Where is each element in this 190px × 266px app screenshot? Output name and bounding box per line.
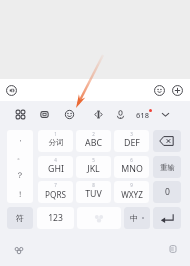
- staticText: 0: [165, 186, 170, 198]
- button[interactable]: 重输: [153, 156, 181, 178]
- button[interactable]: 分词: [38, 130, 73, 152]
- staticText: JKL: [87, 163, 100, 175]
- button[interactable]: Keyboard layouts: [14, 108, 27, 121]
- button[interactable]: 0: [153, 181, 181, 203]
- staticText: ！: [16, 189, 24, 199]
- button[interactable]: GHI: [38, 156, 73, 178]
- button[interactable]: 符: [7, 207, 33, 229]
- staticText: WXYZ: [121, 189, 143, 200]
- button[interactable]: Clipboard: [38, 108, 51, 121]
- staticText: 123: [48, 212, 63, 224]
- button[interactable]: 618: [134, 108, 151, 121]
- button[interactable]: ABC: [76, 130, 111, 152]
- button[interactable]: Keyboard settings: [166, 243, 178, 255]
- staticText: DEF: [124, 137, 140, 149]
- button[interactable]: WXYZ: [114, 181, 149, 203]
- staticText: ，: [17, 134, 24, 143]
- button[interactable]: Space: [77, 207, 121, 229]
- button[interactable]: Backspace: [153, 130, 181, 152]
- button[interactable]: Emoji: [154, 85, 165, 96]
- staticText: 3: [130, 131, 133, 137]
- staticText: PQRS: [45, 189, 66, 200]
- staticText: 1: [54, 131, 57, 137]
- button[interactable]: Text settings: [92, 108, 105, 121]
- staticText: 7: [54, 182, 57, 188]
- button[interactable]: Collapse keyboard: [159, 108, 172, 121]
- staticText: 618: [136, 110, 149, 120]
- button[interactable]: 123: [37, 207, 74, 229]
- staticText: ？: [16, 170, 24, 180]
- staticText: 中: [130, 213, 138, 223]
- staticText: 8: [92, 182, 95, 188]
- button[interactable]: Input method logo: [13, 244, 25, 256]
- button[interactable]: MNO: [114, 156, 149, 178]
- staticText: 分词: [48, 138, 64, 148]
- staticText: 9: [130, 182, 133, 188]
- staticText: 4: [54, 157, 57, 163]
- staticText: 5: [92, 157, 95, 163]
- button[interactable]: Voice input: [114, 108, 127, 121]
- staticText: ABC: [85, 137, 102, 149]
- staticText: 。: [17, 152, 24, 161]
- button[interactable]: Voice input: [6, 85, 17, 96]
- button[interactable]: Attach: [172, 85, 183, 96]
- button[interactable]: 中: [124, 207, 150, 229]
- button[interactable]: PQRS: [38, 181, 73, 203]
- button[interactable]: Emoticons: [63, 108, 76, 121]
- staticText: 重输: [160, 163, 175, 172]
- button[interactable]: TUV: [76, 181, 111, 203]
- button[interactable]: JKL: [76, 156, 111, 178]
- staticText: MNO: [121, 163, 143, 175]
- button[interactable]: DEF: [114, 130, 149, 152]
- button[interactable]: Punctuation: [7, 130, 33, 203]
- staticText: 6: [130, 157, 133, 163]
- staticText: 2: [92, 131, 95, 137]
- staticText: TUV: [85, 188, 102, 200]
- button[interactable]: Enter: [153, 207, 181, 229]
- staticText: GHI: [48, 163, 64, 175]
- staticText: 符: [16, 213, 24, 223]
